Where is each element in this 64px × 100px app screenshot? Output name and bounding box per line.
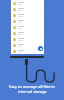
button[interactable]: [11, 36, 44, 42]
button[interactable]: [11, 0, 44, 6]
staticText: internal storage: [18, 89, 47, 94]
button[interactable]: Add: [38, 46, 43, 51]
staticText: Easy to manage all files in: [9, 84, 55, 89]
button[interactable]: [11, 24, 44, 30]
button[interactable]: [11, 42, 44, 48]
button[interactable]: [11, 48, 44, 54]
button[interactable]: [11, 12, 44, 18]
button[interactable]: [11, 6, 44, 12]
button[interactable]: [11, 30, 44, 36]
button[interactable]: [11, 18, 44, 24]
